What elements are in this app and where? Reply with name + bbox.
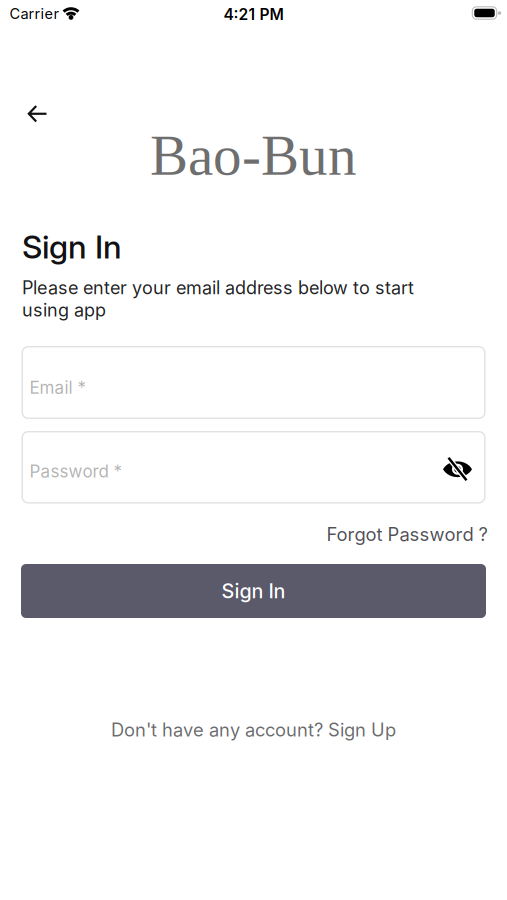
button[interactable]: Forgot Password ?: [326, 523, 487, 545]
button[interactable]: Back: [19, 96, 55, 131]
staticText: Don't have any account?: [111, 719, 323, 741]
button[interactable]: Email: [21, 346, 485, 419]
button[interactable]: Sign Up: [328, 719, 396, 741]
staticText: Email *: [29, 377, 86, 398]
staticText: Bao-Bun: [150, 124, 357, 187]
staticText: Forgot Password ?: [326, 523, 487, 545]
button[interactable]: Sign In: [21, 564, 486, 618]
staticText: Please enter your email address below to…: [22, 277, 414, 320]
staticText: Carrier: [9, 5, 58, 22]
button[interactable]: Password: [21, 431, 485, 503]
staticText: Sign Up: [328, 719, 396, 741]
button[interactable]: Show password: [436, 450, 478, 486]
staticText: Sign In: [221, 579, 285, 603]
staticText: Sign In: [22, 228, 122, 266]
staticText: Password *: [29, 461, 122, 481]
staticText: 4:21 PM: [223, 5, 283, 23]
